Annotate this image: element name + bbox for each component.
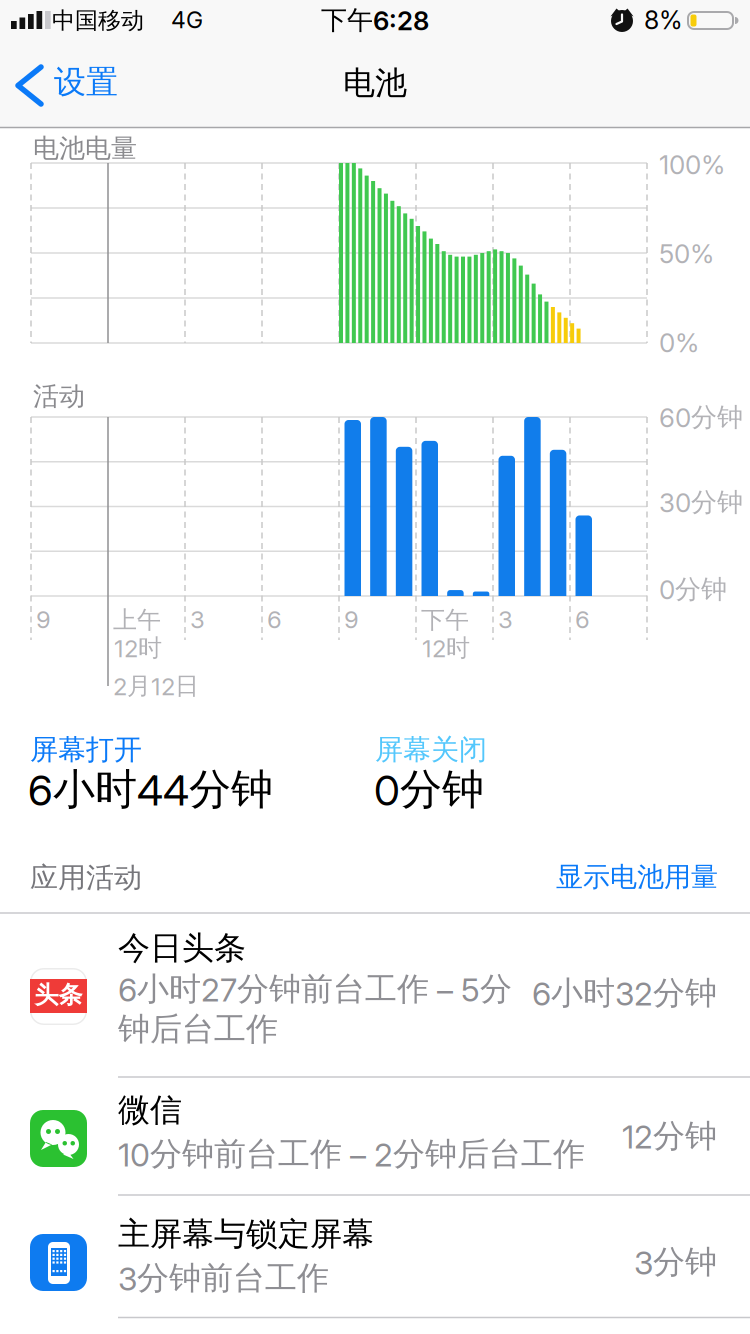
- staticText: 50%: [659, 238, 714, 269]
- staticText: 9: [36, 605, 51, 634]
- staticText: 6小时44分钟: [28, 763, 273, 816]
- button[interactable]: 显示电池用量: [556, 860, 750, 894]
- button[interactable]: 微信: [0, 1077, 750, 1195]
- staticText: 中国移动: [52, 6, 144, 35]
- staticText: 6小时27分钟前台工作 – 5分: [118, 969, 512, 1009]
- staticText: 30分钟: [659, 486, 743, 519]
- button[interactable]: 设置: [0, 65, 750, 1334]
- staticText: 微信: [118, 1090, 182, 1130]
- staticText: 60分钟: [659, 401, 743, 434]
- staticText: 0分钟: [374, 763, 484, 816]
- staticText: 应用活动: [30, 860, 142, 895]
- staticText: 上午: [113, 605, 161, 635]
- staticText: 屏幕打开: [30, 732, 142, 767]
- staticText: 8%: [644, 5, 683, 35]
- staticText: 屏幕关闭: [375, 732, 487, 767]
- button[interactable]: 头条: [0, 913, 750, 1077]
- staticText: 电池: [343, 63, 407, 103]
- staticText: 3: [498, 605, 513, 634]
- button[interactable]: 主屏幕与锁定屏幕: [0, 1195, 750, 1317]
- staticText: 显示电池用量: [556, 860, 718, 894]
- staticText: 4G: [171, 6, 203, 34]
- staticText: 电池电量: [33, 132, 137, 165]
- staticText: 活动: [33, 380, 85, 413]
- staticText: 0%: [659, 327, 699, 358]
- staticText: 头条: [34, 980, 82, 1010]
- staticText: 12分钟: [622, 1116, 717, 1156]
- staticText: 0分钟: [659, 573, 727, 606]
- staticText: 6: [575, 605, 590, 634]
- staticText: 12时: [114, 633, 162, 663]
- staticText: 6: [267, 605, 282, 634]
- staticText: 2月12日: [113, 671, 199, 701]
- staticText: 今日头条: [118, 928, 246, 968]
- staticText: 3分钟: [634, 1242, 717, 1282]
- staticText: 6小时32分钟: [532, 973, 717, 1013]
- staticText: 下午6:28: [321, 4, 429, 37]
- staticText: 10分钟前台工作 – 2分钟后台工作: [118, 1134, 585, 1174]
- staticText: 设置: [54, 62, 118, 102]
- staticText: 3分钟前台工作: [118, 1258, 329, 1298]
- staticText: 下午: [421, 605, 469, 635]
- staticText: 100%: [659, 149, 725, 180]
- staticText: 12时: [422, 633, 470, 663]
- staticText: 钟后台工作: [118, 1009, 278, 1049]
- staticText: 主屏幕与锁定屏幕: [118, 1214, 374, 1254]
- staticText: 3: [190, 605, 205, 634]
- staticText: 9: [344, 605, 359, 634]
